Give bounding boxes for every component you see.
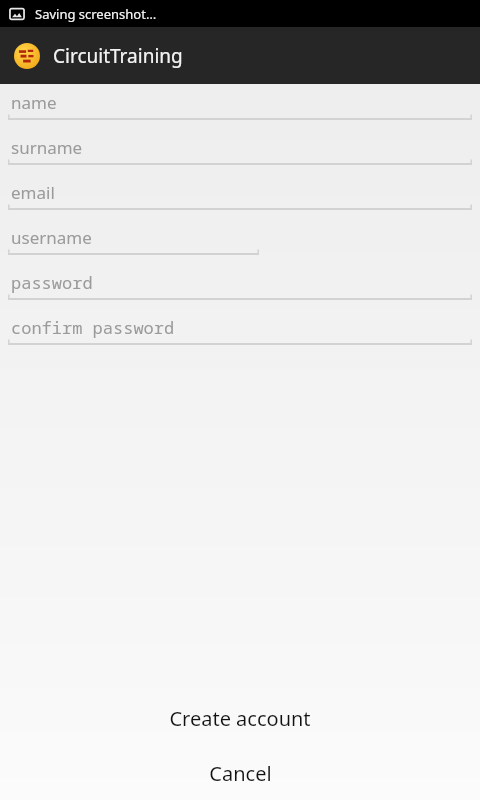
button[interactable]: Cancel — [0, 749, 480, 797]
button[interactable]: CircuitTraining — [0, 27, 480, 84]
staticText: username — [11, 226, 92, 249]
staticText: CircuitTraining — [53, 43, 183, 69]
staticText: confirm password — [11, 316, 175, 339]
button[interactable]: confirm password — [0, 310, 480, 355]
button[interactable]: surname — [0, 130, 480, 175]
staticText: surname — [11, 136, 83, 159]
staticText: email — [11, 181, 55, 204]
staticText: password — [11, 271, 93, 294]
button[interactable]: Create account — [0, 694, 480, 742]
button[interactable]: name — [0, 85, 480, 130]
staticText: name — [11, 91, 57, 114]
staticText: Create account — [169, 705, 311, 732]
staticText: Cancel — [209, 760, 272, 787]
button[interactable]: username — [0, 220, 480, 265]
staticText: Saving screenshot… — [35, 5, 157, 23]
button[interactable]: email — [0, 175, 480, 220]
button[interactable]: password — [0, 265, 480, 310]
